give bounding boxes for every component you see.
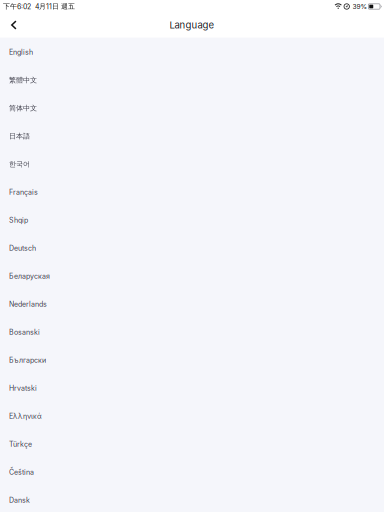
button[interactable]: Bosanski (0, 318, 384, 346)
staticText: 日本語 (9, 132, 30, 140)
button[interactable]: Français (0, 178, 384, 206)
staticText: Nederlands (9, 300, 47, 308)
button[interactable]: Ελληνικά (0, 402, 384, 430)
button[interactable]: 日本語 (0, 122, 384, 150)
staticText: Ελληνικά (9, 412, 42, 420)
staticText: 简体中文 (9, 104, 37, 112)
staticText: Dansk (9, 496, 30, 504)
button[interactable]: Български (0, 346, 384, 374)
staticText: Български (9, 356, 46, 364)
button[interactable]: 한국어 (0, 150, 384, 178)
button[interactable]: English (0, 38, 384, 66)
button[interactable]: Shqip (0, 206, 384, 234)
button[interactable]: Hrvatski (0, 374, 384, 402)
staticText: Беларуская (9, 272, 50, 280)
staticText: Shqip (9, 216, 28, 224)
button[interactable]: Nederlands (0, 290, 384, 318)
staticText: Language (169, 19, 214, 31)
button[interactable]: Back (4, 20, 24, 30)
staticText: English (9, 48, 33, 56)
staticText: Türkçe (9, 440, 32, 448)
staticText: 繁體中文 (9, 76, 37, 84)
staticText: Hrvatski (9, 384, 37, 392)
button[interactable]: Dansk (0, 486, 384, 512)
staticText: 下午6:02 4月11日 週五 (3, 2, 75, 11)
staticText: Deutsch (9, 244, 36, 252)
staticText: Čeština (9, 468, 34, 476)
button[interactable]: Беларуская (0, 262, 384, 290)
button[interactable]: Deutsch (0, 234, 384, 262)
staticText: Bosanski (9, 328, 40, 336)
button[interactable]: 繁體中文 (0, 66, 384, 94)
staticText: 39% (352, 2, 367, 11)
staticText: Français (9, 188, 38, 196)
button[interactable]: 简体中文 (0, 94, 384, 122)
button[interactable]: Čeština (0, 458, 384, 486)
staticText: 한국어 (9, 160, 30, 168)
button[interactable]: Türkçe (0, 430, 384, 458)
